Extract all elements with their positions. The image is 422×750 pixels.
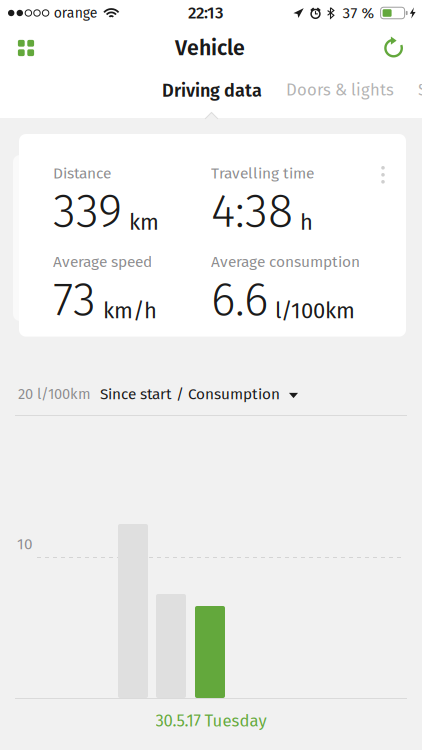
button[interactable]: 20 l/100km	[0, 377, 422, 411]
staticText: 4:38	[211, 183, 293, 239]
staticText: Travelling time	[211, 164, 314, 183]
staticText: Se	[418, 80, 422, 100]
staticText: Distance	[53, 164, 111, 183]
staticText: Average speed	[53, 253, 152, 271]
button[interactable]: Doors & lights	[274, 80, 406, 114]
staticText: Driving data	[162, 80, 262, 102]
staticText: 22:13	[188, 3, 224, 23]
staticText: Vehicle	[175, 35, 245, 61]
staticText: 339	[53, 183, 122, 239]
staticText: l/100km	[275, 298, 355, 324]
button[interactable]: Refresh	[370, 24, 418, 72]
staticText: 10	[17, 535, 33, 553]
staticText: orange	[54, 5, 98, 21]
button[interactable]: Se	[406, 80, 422, 114]
staticText: Average consumption	[211, 253, 360, 271]
staticText: h	[300, 209, 313, 236]
button[interactable]: More options	[374, 164, 392, 190]
button[interactable]: Dashboard menu	[2, 24, 50, 72]
staticText: 73	[53, 272, 96, 328]
staticText: Since start / Consumption	[100, 385, 280, 403]
staticText: 30.5.17 Tuesday	[155, 711, 266, 731]
staticText: km	[129, 209, 159, 236]
staticText: 6.6	[211, 272, 268, 328]
staticText: 37 %	[343, 4, 375, 22]
staticText: Doors & lights	[286, 80, 394, 100]
button[interactable]: Driving data	[150, 80, 274, 114]
staticText: km/h	[103, 298, 157, 324]
staticText: 20 l/100km	[18, 385, 91, 403]
